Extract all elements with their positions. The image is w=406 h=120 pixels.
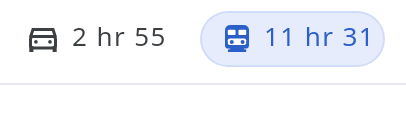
- staticText: 11 hr 31: [264, 18, 376, 53]
- other: Transit: [225, 25, 249, 52]
- staticText: 2 hr 55: [72, 18, 167, 53]
- button[interactable]: Driving: [15, 11, 182, 67]
- button[interactable]: Transit: [200, 11, 385, 67]
- other: Driving: [29, 28, 57, 52]
